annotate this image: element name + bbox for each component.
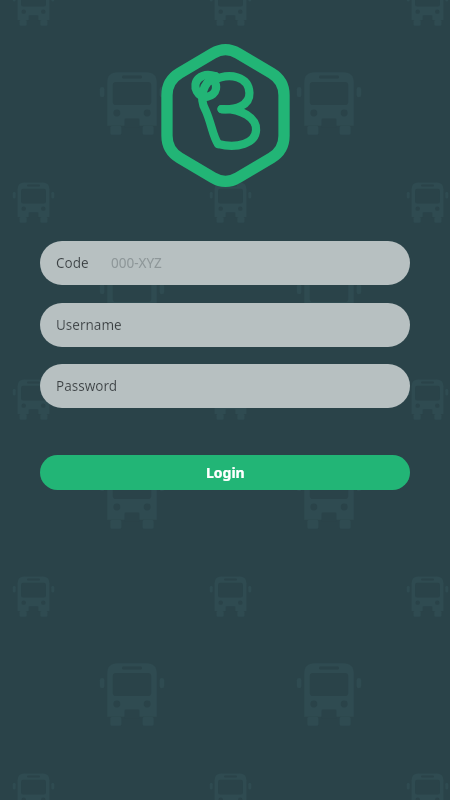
staticText: Login [206, 463, 245, 482]
button[interactable]: Password [40, 364, 410, 408]
staticText: Username [56, 316, 122, 334]
button[interactable]: Code [40, 241, 410, 285]
staticText: 000-XYZ [111, 254, 162, 272]
other: App logo [159, 43, 292, 188]
staticText: Code [56, 254, 89, 272]
staticText: Password [56, 377, 118, 395]
button[interactable]: Login [40, 455, 410, 490]
button[interactable]: Username [40, 303, 410, 347]
